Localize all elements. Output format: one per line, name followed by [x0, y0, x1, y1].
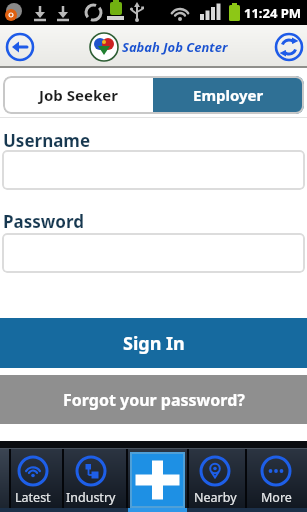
button[interactable]: Sign In — [0, 318, 307, 368]
button[interactable] — [2, 150, 305, 190]
staticText: Sabah Job Center — [122, 38, 228, 56]
staticText: 11:24 PM — [244, 4, 302, 22]
button[interactable] — [274, 32, 304, 62]
button[interactable]: Latest — [7, 448, 58, 512]
button[interactable] — [130, 452, 185, 508]
staticText: Latest — [15, 489, 51, 506]
button[interactable]: Nearby — [187, 448, 243, 512]
staticText: Sign In — [123, 331, 185, 356]
staticText: More — [261, 489, 292, 506]
button[interactable]: Job Seeker — [3, 76, 153, 114]
staticText: Forgot your password? — [63, 389, 245, 411]
button[interactable]: Forgot your password? — [0, 375, 307, 424]
button[interactable]: Industry — [60, 448, 122, 512]
button[interactable] — [5, 32, 35, 62]
staticText: Nearby — [194, 489, 237, 506]
staticText: Job Seeker — [39, 85, 118, 105]
button[interactable]: More — [247, 448, 305, 512]
staticText: Employer — [193, 85, 264, 105]
staticText: Industry — [66, 489, 116, 506]
button[interactable]: Employer — [153, 76, 304, 114]
staticText: Username — [3, 129, 91, 150]
staticText: Password — [3, 210, 84, 231]
button[interactable] — [2, 233, 305, 273]
